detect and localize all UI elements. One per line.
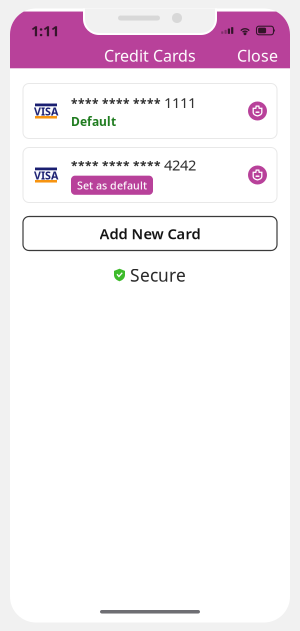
staticText: 4242 bbox=[164, 155, 196, 175]
staticText: **** **** **** bbox=[71, 158, 161, 174]
staticText: Set as default bbox=[77, 178, 147, 192]
button[interactable]: Delete card bbox=[248, 101, 267, 120]
staticText: Close bbox=[237, 45, 278, 66]
staticText: VISA bbox=[34, 104, 58, 118]
staticText: Credit Cards bbox=[104, 45, 196, 66]
staticText: 1:11 bbox=[31, 21, 59, 40]
button[interactable]: Set as default bbox=[71, 176, 153, 195]
staticText: Secure bbox=[130, 263, 186, 286]
button[interactable]: Delete card bbox=[248, 165, 267, 184]
staticText: Default bbox=[71, 113, 116, 129]
staticText: **** **** **** bbox=[71, 96, 161, 111]
staticText: Add New Card bbox=[99, 224, 200, 243]
staticText: VISA bbox=[34, 168, 58, 182]
button[interactable]: Close bbox=[237, 39, 290, 72]
button[interactable]: Add New Card bbox=[23, 216, 277, 250]
staticText: 1111 bbox=[164, 93, 196, 112]
